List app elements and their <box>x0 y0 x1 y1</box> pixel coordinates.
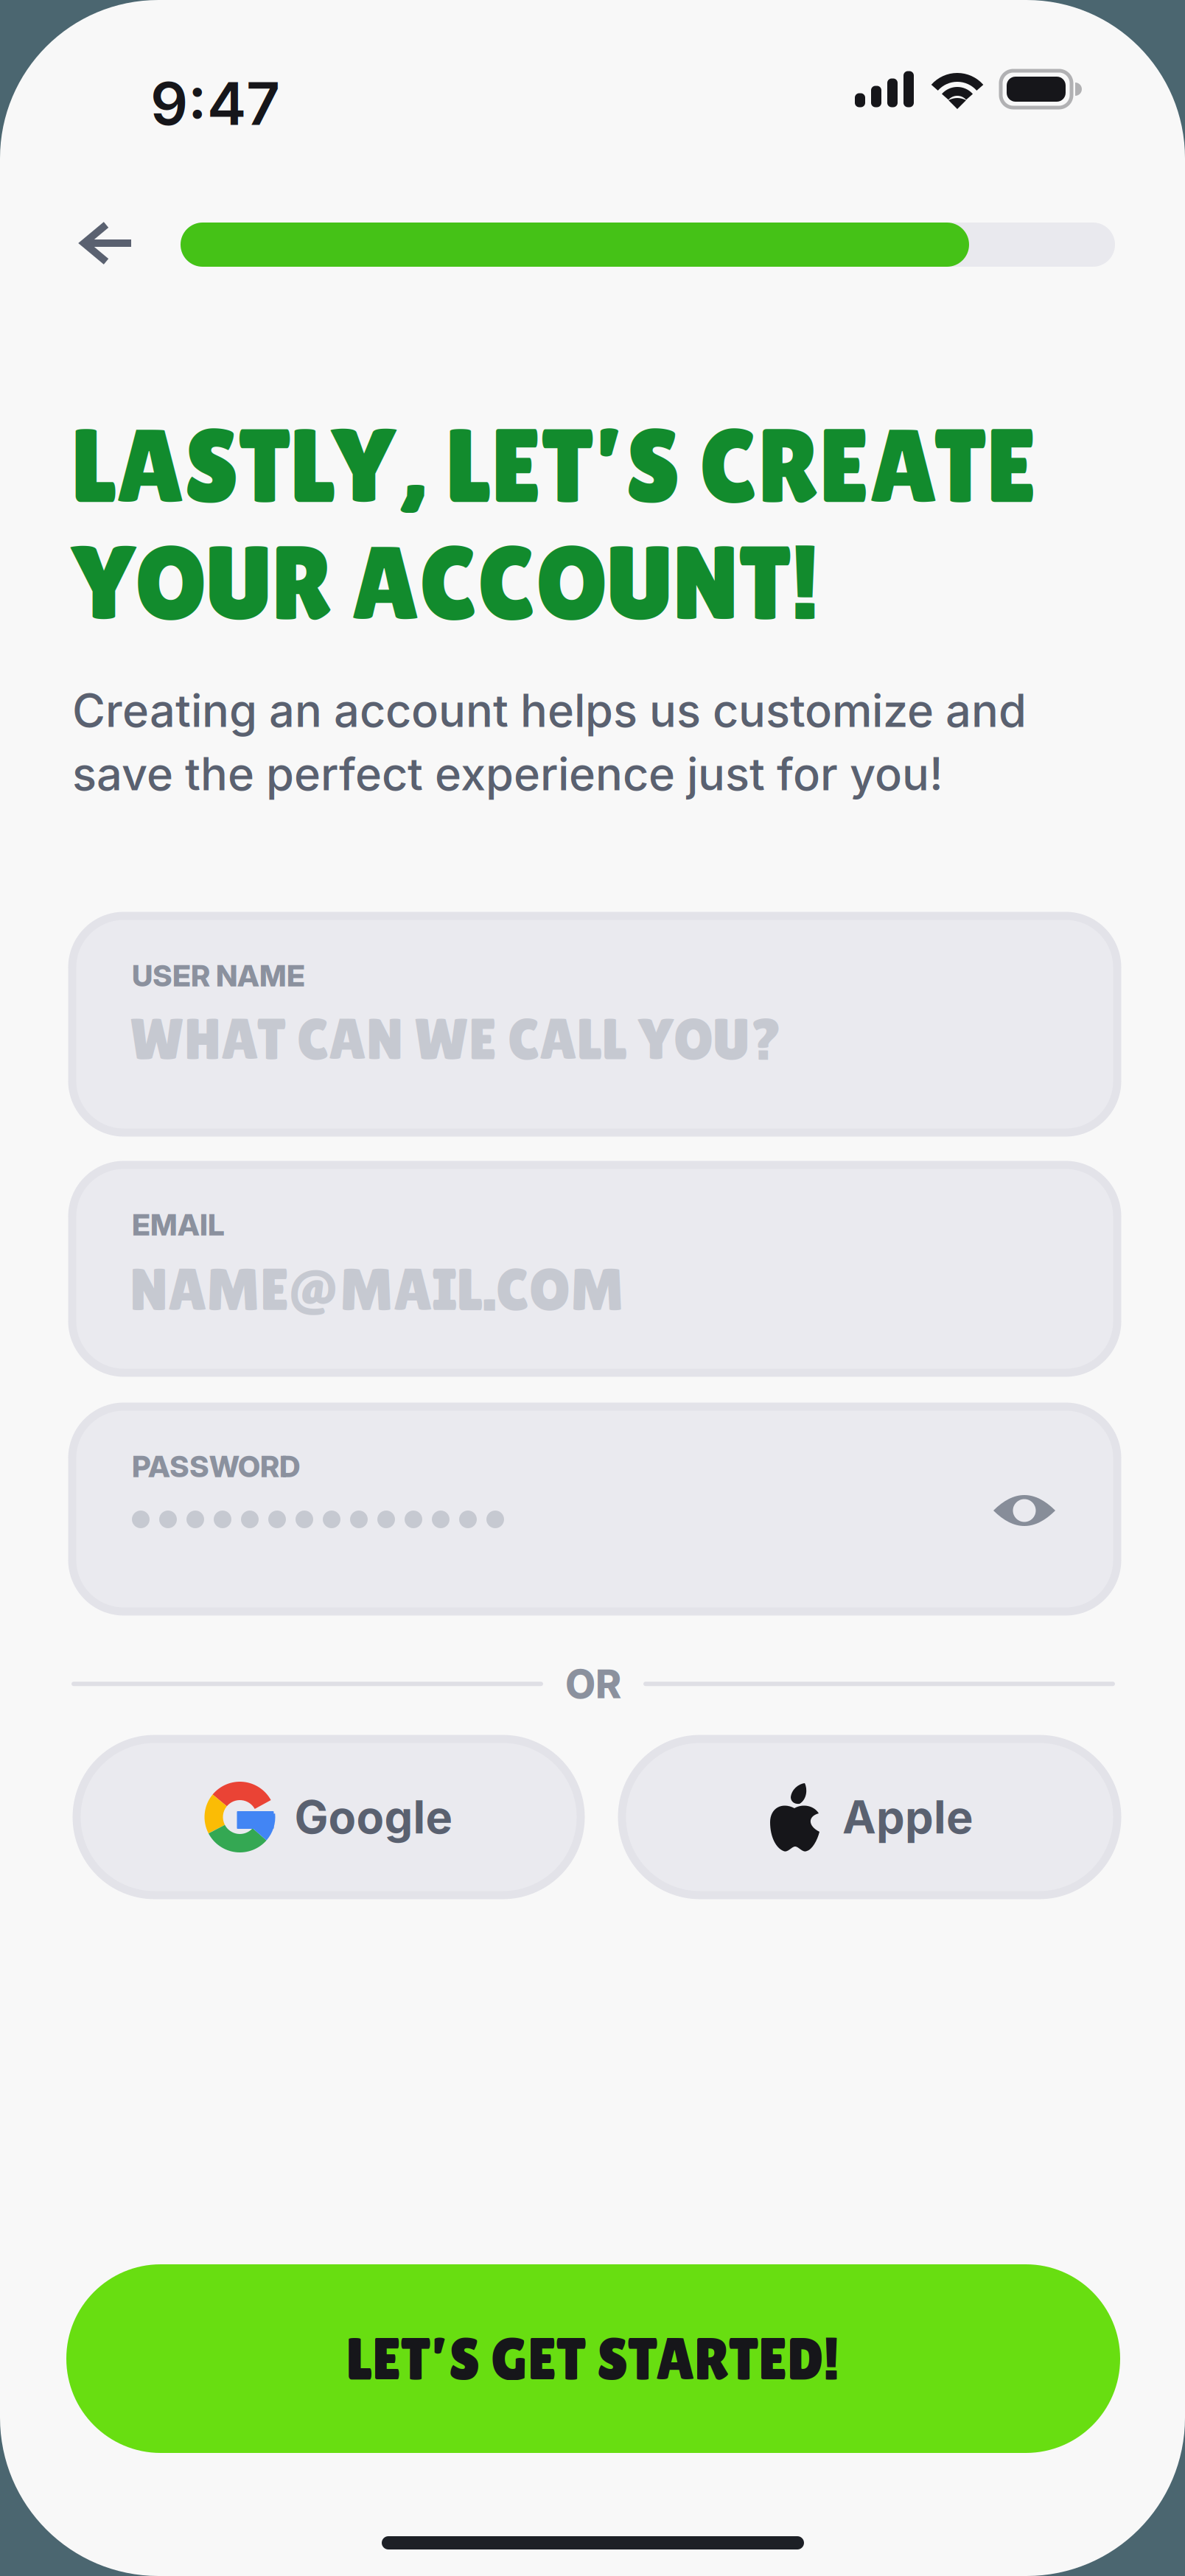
button[interactable]: Apple <box>622 1739 1117 1895</box>
staticText: save the perfect experience just for you… <box>72 746 943 801</box>
staticText: LASTLY, LET’S CREATE <box>71 407 1037 525</box>
staticText: Creating an account helps us customize a… <box>72 683 1027 738</box>
staticText: PASSWORD <box>132 1449 300 1484</box>
staticText: 9:47 <box>150 68 280 139</box>
staticText: Apple <box>842 1790 973 1844</box>
staticText: LET’S GET STARTED! <box>346 2325 840 2392</box>
staticText: Google <box>294 1790 453 1844</box>
staticText: USER NAME <box>132 958 305 994</box>
button[interactable]: Back <box>78 221 137 265</box>
staticText: OR <box>565 1660 621 1708</box>
staticText: EMAIL <box>132 1207 225 1243</box>
staticText: WHAT CAN WE CALL YOU? <box>130 1007 783 1072</box>
button[interactable]: Google <box>77 1739 581 1895</box>
staticText: NAME@MAIL.COM <box>130 1256 624 1323</box>
staticText: YOUR ACCOUNT! <box>71 524 820 642</box>
button[interactable]: Show password <box>991 1488 1058 1533</box>
button[interactable]: LET’S GET STARTED! <box>66 2264 1120 2453</box>
